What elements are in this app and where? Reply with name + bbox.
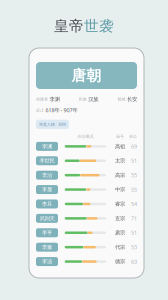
- staticText: 长安: [127, 96, 137, 103]
- staticText: 在位概况: [77, 134, 93, 139]
- button[interactable]: 武则天: [36, 214, 137, 223]
- button[interactable]: 李旦: [36, 199, 137, 208]
- staticText: 李治: [42, 172, 52, 178]
- staticText: 武则天: [39, 215, 54, 222]
- button[interactable]: 李渊: [36, 142, 137, 151]
- staticText: 李适: [42, 258, 52, 265]
- staticText: 民族: [79, 97, 87, 102]
- staticText: 睿宗: [115, 201, 125, 207]
- staticText: 肃宗: [115, 229, 125, 236]
- button[interactable]: 李亨: [36, 228, 137, 237]
- staticText: 53: [131, 244, 137, 251]
- staticText: 55: [131, 172, 137, 179]
- button[interactable]: 浏览人物 · 3000: [36, 120, 69, 129]
- staticText: 63: [131, 258, 137, 265]
- staticText: 浏览人物 · 3000: [39, 122, 66, 127]
- staticText: 李渊: [42, 143, 52, 150]
- staticText: 都城: [117, 97, 125, 102]
- staticText: 起止: [36, 108, 44, 112]
- staticText: 51: [131, 229, 137, 236]
- staticText: 51: [131, 157, 137, 164]
- staticText: 李世民: [39, 157, 54, 164]
- staticText: 李亨: [42, 229, 52, 236]
- staticText: 李豫: [42, 244, 52, 250]
- button[interactable]: 李治: [36, 171, 137, 180]
- staticText: 皇帝: [54, 17, 84, 35]
- staticText: 高宗: [115, 172, 125, 178]
- staticText: 李显: [42, 186, 52, 193]
- staticText: 世袭: [84, 17, 114, 35]
- staticText: 54: [131, 200, 137, 207]
- staticText: 高祖: [115, 143, 125, 150]
- staticText: 李渊: [49, 96, 59, 103]
- staticText: 太宗: [115, 157, 125, 164]
- staticText: 69: [131, 143, 137, 150]
- button[interactable]: 李豫: [36, 243, 137, 252]
- staticText: 在位: [129, 134, 137, 139]
- staticText: 中宗: [115, 186, 125, 193]
- button[interactable]: 李世民: [36, 156, 137, 165]
- staticText: 618年 - 907年: [45, 107, 77, 114]
- staticText: 汉族: [88, 96, 98, 103]
- staticText: 代宗: [115, 244, 125, 250]
- button[interactable]: 李显: [36, 185, 137, 194]
- staticText: 创建者: [36, 97, 48, 102]
- button[interactable]: 李适: [36, 257, 137, 266]
- staticText: 玄宗: [115, 215, 125, 222]
- staticText: 德宗: [115, 258, 125, 265]
- staticText: 55: [131, 186, 137, 193]
- staticText: 唐朝: [71, 66, 101, 84]
- staticText: 李旦: [42, 201, 52, 207]
- staticText: 71: [131, 215, 137, 222]
- staticText: 庙号: [116, 134, 124, 139]
